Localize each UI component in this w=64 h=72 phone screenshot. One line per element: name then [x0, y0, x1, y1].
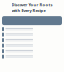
- staticText: Discover Your Roots: [11, 2, 52, 7]
- staticText: with Every Recipe: [11, 8, 45, 13]
